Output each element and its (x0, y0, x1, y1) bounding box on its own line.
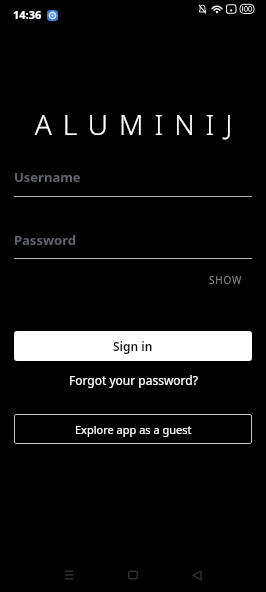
button[interactable]: Explore app as a guest (14, 414, 252, 444)
staticText: Explore app as a guest (75, 422, 192, 437)
button[interactable]: Forgot your password? (69, 372, 198, 388)
button[interactable] (126, 568, 140, 582)
staticText: Password (14, 231, 76, 249)
staticText: Sign in (113, 338, 153, 354)
button[interactable]: SHOW (209, 273, 243, 287)
button[interactable] (62, 568, 76, 582)
staticText: Username (14, 168, 81, 186)
button[interactable]: Sign in (14, 331, 252, 361)
button[interactable] (190, 568, 204, 582)
staticText: ALUMINIJ (6, 105, 266, 143)
staticText: 14:36 (13, 7, 42, 22)
